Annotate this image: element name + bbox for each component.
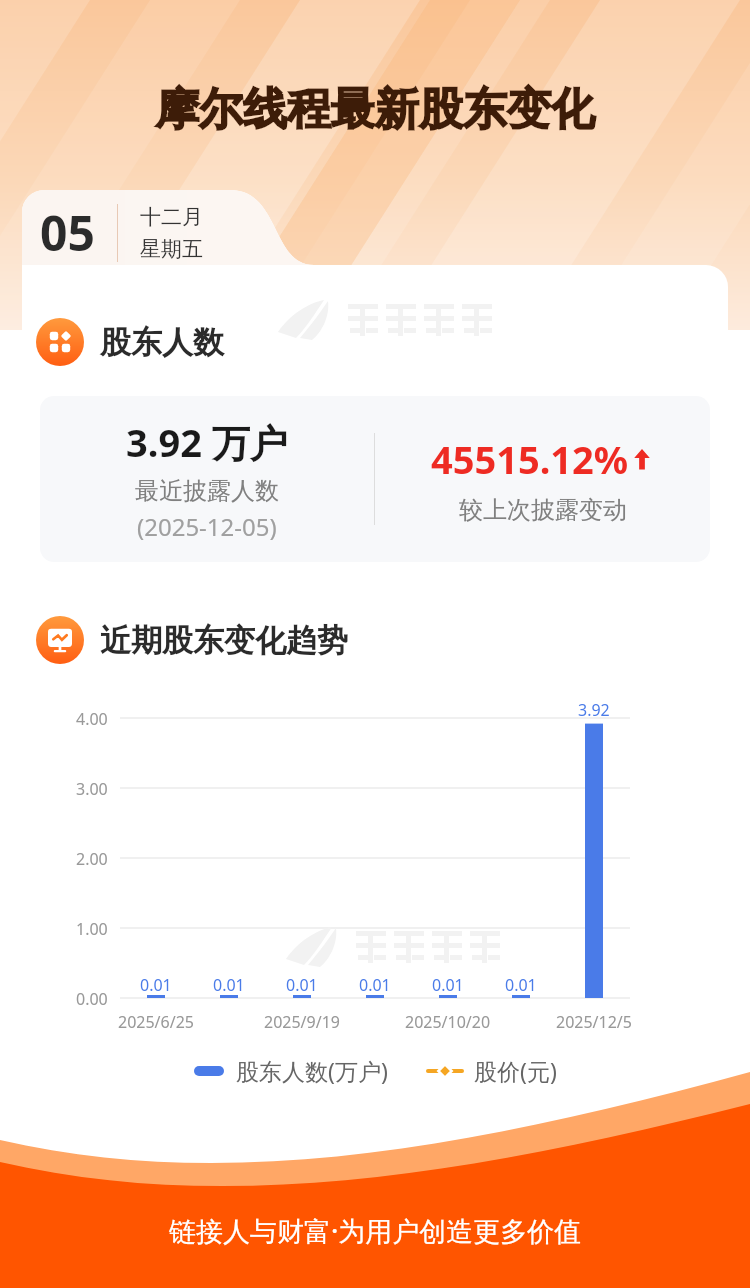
- staticText: 2025/12/5: [556, 1011, 632, 1033]
- staticText: 05: [40, 200, 95, 265]
- staticText: 近期股东变化趋势: [100, 621, 348, 660]
- staticText: 4.00: [76, 708, 108, 730]
- button[interactable]: 股东人数: [36, 318, 224, 366]
- staticText: 45515.12%: [431, 433, 629, 485]
- other: 股东人数: [36, 318, 84, 366]
- staticText: 2.00: [76, 848, 108, 870]
- staticText: 2025/6/25: [118, 1011, 194, 1033]
- staticText: 0.00: [76, 988, 108, 1010]
- staticText: 3.92: [578, 699, 610, 721]
- staticText: 0.01: [432, 974, 464, 996]
- button[interactable]: 股东人数(万户): [194, 1055, 388, 1086]
- staticText: 摩尔线程最新股东变化: [155, 82, 595, 137]
- button[interactable]: 股价(元): [428, 1055, 557, 1086]
- staticText: 2025/10/20: [405, 1011, 491, 1033]
- staticText: 0.01: [286, 974, 318, 996]
- staticText: 0.01: [140, 974, 172, 996]
- button[interactable]: [0, 690, 750, 1040]
- staticText: 十二月: [140, 204, 203, 230]
- button[interactable]: 3.92 万户: [40, 396, 710, 562]
- staticText: 链接人与财富·为用户创造更多价值: [169, 1212, 582, 1249]
- staticText: 3.92 万户: [126, 416, 288, 468]
- staticText: 股东人数(万户): [236, 1055, 388, 1086]
- button[interactable]: 近期股东变化趋势: [36, 616, 348, 664]
- staticText: 3.00: [76, 778, 108, 800]
- staticText: 较上次披露变动: [459, 495, 627, 525]
- staticText: 股东人数: [100, 323, 224, 362]
- staticText: 0.01: [505, 974, 537, 996]
- staticText: 1.00: [76, 918, 108, 940]
- staticText: 星期五: [140, 236, 203, 262]
- staticText: 0.01: [213, 974, 245, 996]
- staticText: (2025-12-05): [137, 510, 277, 543]
- staticText: 最近披露人数: [135, 476, 279, 506]
- other: 近期股东变化趋势: [36, 616, 84, 664]
- staticText: 股价(元): [474, 1055, 557, 1086]
- staticText: 0.01: [359, 974, 391, 996]
- staticText: 2025/9/19: [264, 1011, 340, 1033]
